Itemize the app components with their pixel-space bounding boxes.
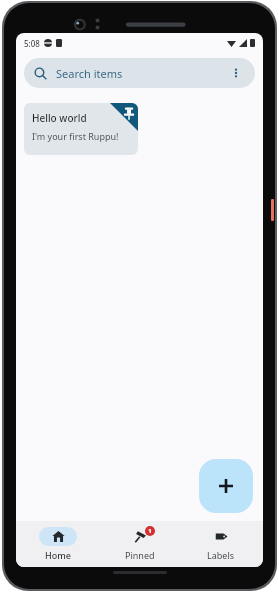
staticText: Home <box>45 549 71 561</box>
staticText: Pinned <box>125 549 155 561</box>
staticText: 1 <box>148 527 152 535</box>
button[interactable]: Home <box>18 523 98 565</box>
staticText: 5:08 <box>24 38 40 49</box>
staticText: I'm your first Ruppu! <box>32 130 119 142</box>
staticText: Hello world <box>32 111 87 125</box>
button[interactable]: Labels <box>181 523 261 565</box>
button[interactable]: 1 <box>100 523 180 565</box>
button[interactable]: Add item <box>199 459 253 513</box>
staticText: Search items <box>56 66 123 81</box>
button[interactable]: Hello world <box>24 103 138 155</box>
button[interactable]: Search items <box>24 58 255 88</box>
staticText: Labels <box>207 549 235 561</box>
button[interactable]: More options <box>227 64 245 82</box>
